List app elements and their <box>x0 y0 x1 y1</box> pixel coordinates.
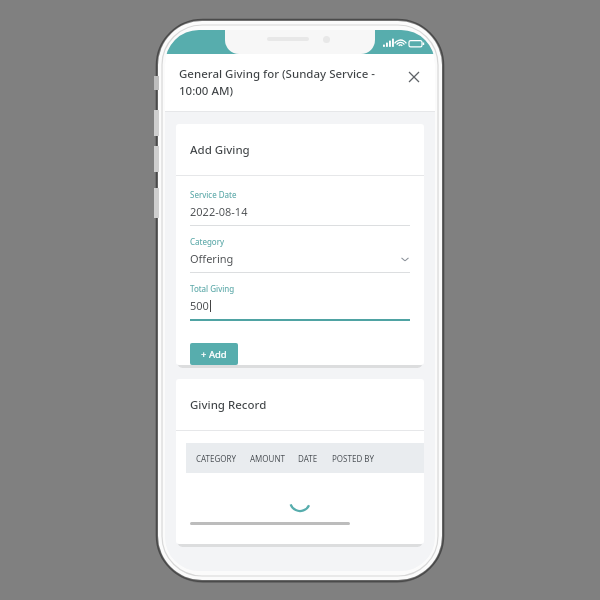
staticText: Service Date <box>190 189 237 200</box>
staticText: CATEGORY <box>196 453 237 464</box>
button[interactable]: Service Date <box>190 189 410 236</box>
staticText: Category <box>190 236 225 247</box>
staticText: Total Giving <box>190 283 235 294</box>
staticText: DATE <box>298 453 318 464</box>
button[interactable]: Close <box>403 66 425 88</box>
staticText: + Add <box>201 348 227 360</box>
staticText: Add Giving <box>190 142 250 158</box>
staticText: POSTED BY <box>332 453 375 464</box>
button[interactable]: Total Giving <box>190 283 410 331</box>
staticText: 2022-08-14 <box>190 204 248 219</box>
button[interactable]: + Add <box>190 343 238 365</box>
staticText: Offering <box>190 251 234 266</box>
staticText: Giving Record <box>190 397 267 413</box>
staticText: AMOUNT <box>250 453 285 464</box>
staticText: 500 <box>190 298 209 313</box>
button[interactable]: Category <box>190 236 410 283</box>
staticText: General Giving for (Sunday Service - 10:… <box>179 66 403 99</box>
